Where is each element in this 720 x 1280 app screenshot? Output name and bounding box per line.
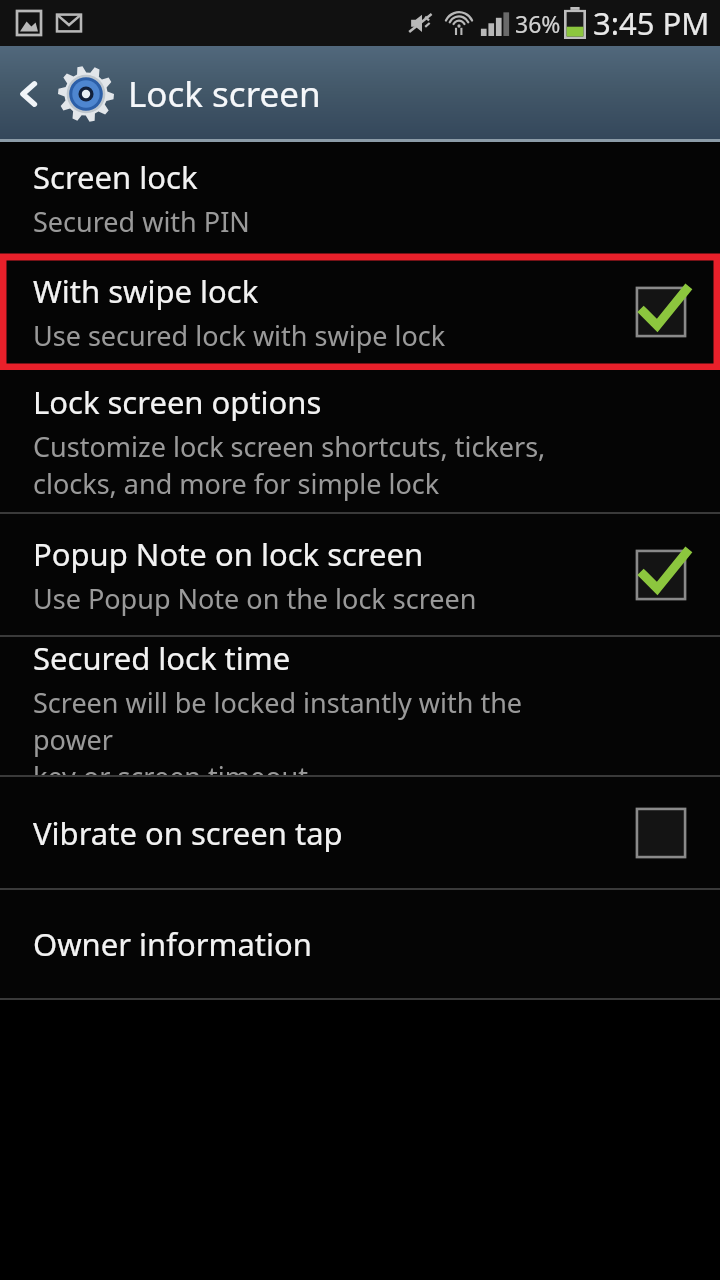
button[interactable]: Screen lock: [0, 142, 720, 254]
button[interactable]: Vibrate on screen tap: [630, 802, 692, 864]
button[interactable]: Lock screen options: [0, 370, 720, 512]
staticText: Screen will be locked instantly with the…: [33, 684, 600, 775]
staticText: Use Popup Note on the lock screen: [33, 580, 477, 617]
staticText: Vibrate on screen tap: [33, 812, 343, 854]
button[interactable]: With swipe lock: [0, 254, 720, 370]
staticText: Secured lock time: [33, 637, 291, 679]
staticText: Use secured lock with swipe lock: [33, 317, 446, 354]
staticText: Secured with PIN: [33, 203, 250, 240]
button[interactable]: Popup Note on lock screen: [630, 544, 692, 606]
staticText: Lock screen options: [33, 381, 322, 423]
button[interactable]: Secured lock time: [0, 637, 720, 775]
staticText: With swipe lock: [33, 270, 259, 312]
staticText: Screen lock: [33, 156, 198, 198]
button[interactable]: Back to Lock screen: [0, 60, 333, 128]
staticText: Lock screen: [128, 70, 321, 118]
staticText: Popup Note on lock screen: [33, 533, 424, 575]
staticText: Customize lock screen shortcuts, tickers…: [33, 428, 546, 502]
staticText: 3:45 PM: [593, 2, 710, 44]
button[interactable]: With swipe lock: [630, 281, 692, 343]
button[interactable]: Vibrate on screen tap: [0, 777, 720, 888]
staticText: Owner information: [33, 923, 312, 965]
button[interactable]: Popup Note on lock screen: [0, 514, 720, 635]
staticText: 36%: [515, 8, 561, 39]
button[interactable]: Owner information: [0, 890, 720, 998]
